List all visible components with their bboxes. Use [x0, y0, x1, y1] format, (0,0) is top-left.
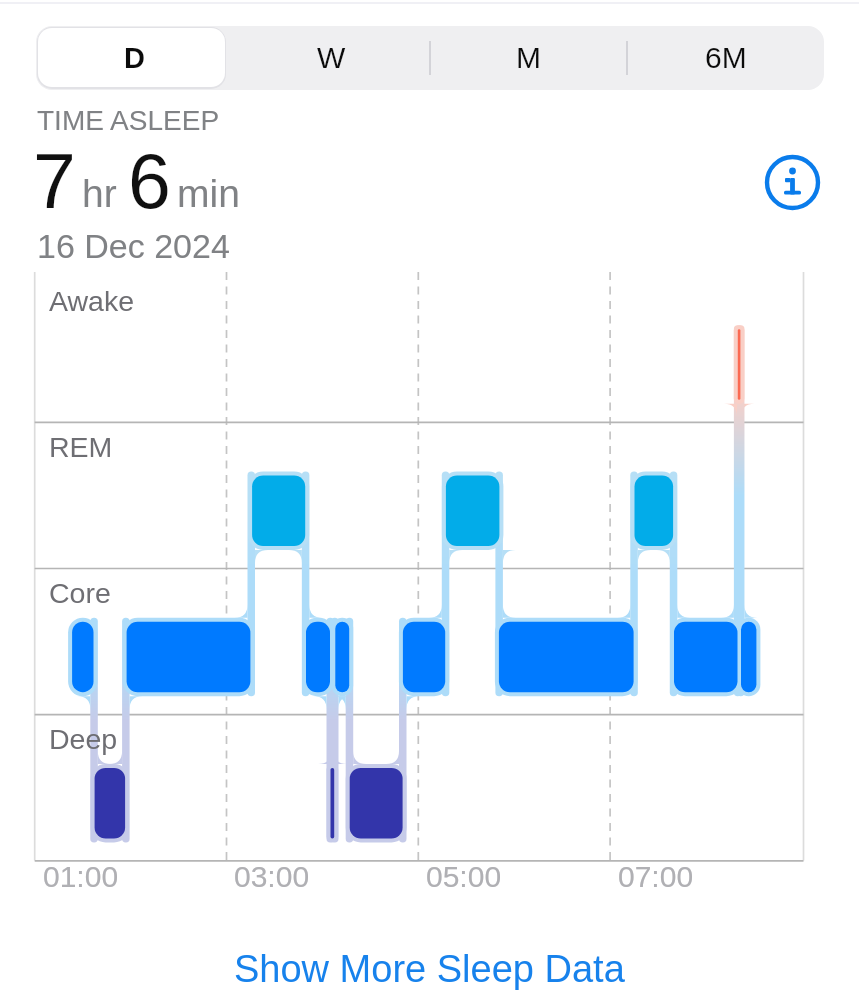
button[interactable]: D	[36, 26, 233, 90]
staticText: 07:00	[618, 860, 694, 894]
staticText: M	[516, 41, 541, 75]
staticText: 03:00	[234, 860, 310, 894]
staticText: hr	[82, 172, 117, 216]
staticText: 01:00	[43, 860, 119, 894]
staticText: 6M	[705, 41, 747, 75]
staticText: min	[177, 172, 240, 216]
staticText: REM	[49, 431, 113, 463]
staticText: 16 Dec 2024	[37, 227, 230, 265]
staticText: Show More Sleep Data	[234, 948, 625, 990]
staticText: Core	[49, 577, 111, 609]
staticText: 6	[128, 138, 171, 224]
staticText: 7	[33, 138, 76, 224]
button[interactable]: Show More Sleep Data	[0, 900, 859, 1000]
staticText: Awake	[49, 285, 135, 317]
staticText: Deep	[49, 723, 118, 755]
staticText: W	[317, 41, 346, 75]
button[interactable]: Information about time asleep	[762, 152, 823, 213]
staticText: D	[124, 42, 145, 74]
button[interactable]: M	[430, 26, 627, 90]
staticText: 05:00	[426, 860, 502, 894]
staticText: TIME ASLEEP	[37, 105, 220, 136]
button[interactable]: 6M	[627, 26, 824, 90]
button[interactable]: W	[233, 26, 430, 90]
